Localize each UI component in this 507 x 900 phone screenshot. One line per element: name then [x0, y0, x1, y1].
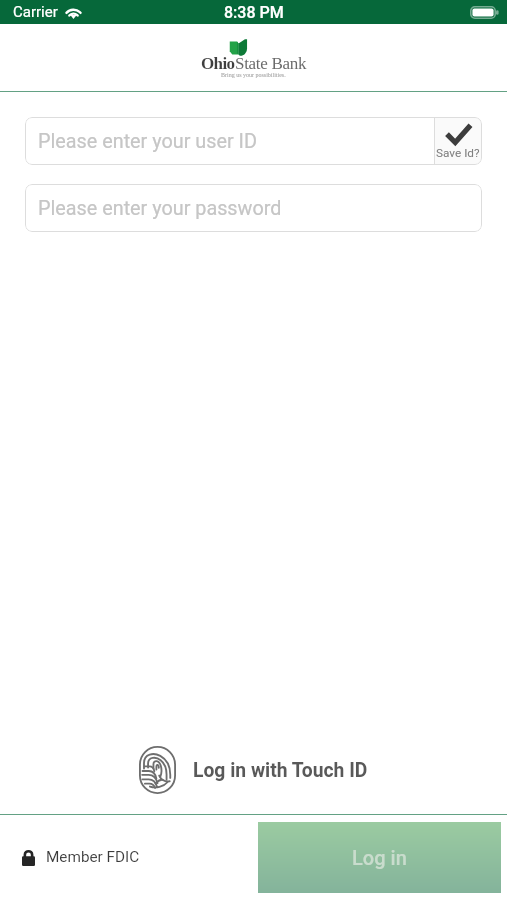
other: Battery [470, 6, 499, 19]
staticText: State Bank [235, 54, 307, 73]
staticText: Save Id? [436, 146, 480, 160]
staticText: Member FDIC [46, 848, 140, 866]
button[interactable]: Log in with Touch ID [0, 742, 507, 798]
staticText: Log in with Touch ID [193, 759, 368, 782]
button[interactable]: Please enter your password [25, 184, 482, 232]
staticText: Log in [352, 846, 407, 869]
button[interactable]: Log in [258, 822, 501, 893]
button[interactable]: Save Id [434, 117, 482, 165]
other: Wi-Fi [64, 6, 83, 19]
staticText: Ohio [201, 54, 235, 73]
staticText: Bring us your possibilities. [221, 72, 286, 79]
staticText: Please enter your password [38, 197, 282, 220]
button[interactable]: Member FDIC [16, 842, 146, 872]
staticText: Please enter your user ID [38, 130, 257, 153]
button[interactable]: Please enter your user ID [25, 117, 434, 165]
staticText: Carrier [13, 3, 58, 21]
staticText: 8:38 PM [224, 3, 284, 22]
